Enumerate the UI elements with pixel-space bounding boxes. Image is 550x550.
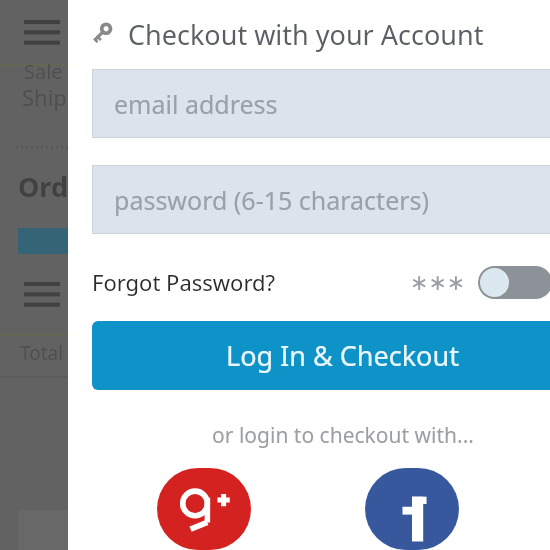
staticText: Ord — [18, 168, 68, 205]
staticText: password (6-15 characters) — [114, 183, 430, 217]
staticText: Ship — [22, 82, 67, 112]
button[interactable]: Log In & Checkout — [92, 321, 550, 390]
staticText: email address — [114, 87, 278, 121]
staticText: ∗∗∗ — [410, 270, 466, 296]
button[interactable]: Login with Facebook — [365, 468, 459, 550]
staticText: Forgot Password? — [92, 267, 276, 297]
staticText: Checkout with your Account — [128, 16, 484, 53]
button[interactable]: Login with Google Plus — [157, 468, 251, 550]
staticText: Sale — [24, 58, 63, 85]
staticText: Log In & Checkout — [226, 337, 459, 374]
button[interactable]: password (6-15 characters) — [93, 166, 550, 233]
staticText: or login to checkout with... — [68, 421, 550, 450]
button[interactable]: email address — [93, 70, 550, 137]
button[interactable]: Forgot Password? — [92, 267, 276, 297]
button[interactable]: Show password — [410, 266, 550, 299]
staticText: Total — [20, 340, 64, 366]
